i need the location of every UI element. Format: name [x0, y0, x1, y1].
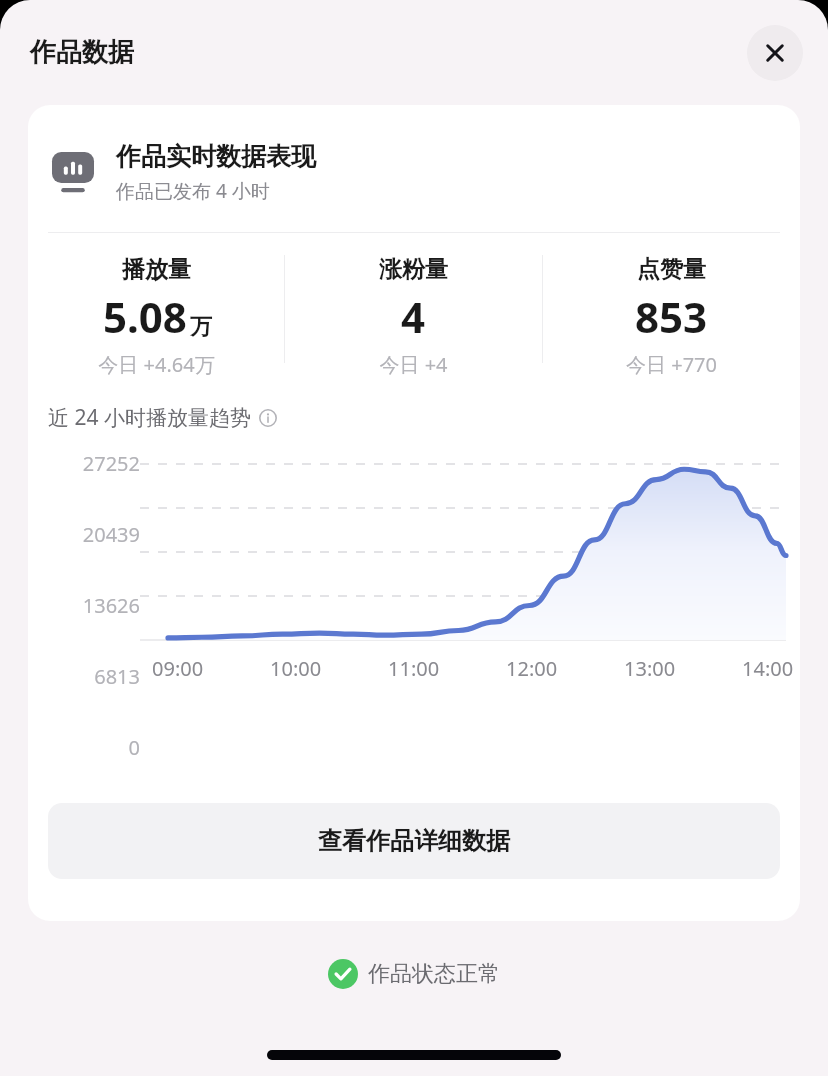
- staticText: 13626: [36, 592, 140, 619]
- staticText: 13:00: [624, 655, 676, 682]
- staticText: 查看作品详细数据: [318, 826, 510, 856]
- staticText: 作品实时数据表现: [116, 141, 316, 172]
- staticText: 点赞量: [637, 255, 706, 284]
- staticText: 播放量: [122, 255, 191, 284]
- staticText: 14:00: [742, 655, 794, 682]
- staticText: 10:00: [270, 655, 322, 682]
- staticText: 作品数据: [30, 36, 134, 69]
- button[interactable]: 查看作品详细数据: [48, 803, 780, 879]
- staticText: 5.08: [103, 288, 187, 345]
- staticText: 4: [401, 288, 426, 345]
- button[interactable]: 说明: [258, 408, 278, 428]
- button[interactable]: 播放量: [28, 255, 284, 378]
- staticText: 11:00: [388, 655, 440, 682]
- staticText: 万: [190, 313, 212, 341]
- staticText: 今日 +770: [626, 351, 717, 378]
- staticText: 作品状态正常: [368, 960, 500, 988]
- staticText: 今日 +4.64万: [98, 351, 215, 378]
- staticText: 12:00: [506, 655, 558, 682]
- staticText: 作品已发布 4 小时: [116, 178, 270, 204]
- staticText: 近 24 小时播放量趋势: [48, 403, 251, 432]
- staticText: 09:00: [152, 655, 204, 682]
- staticText: 今日 +4: [379, 351, 448, 378]
- staticText: 20439: [36, 521, 140, 548]
- staticText: 6813: [36, 663, 140, 690]
- button[interactable]: 涨粉量: [285, 255, 542, 378]
- staticText: 0: [36, 734, 140, 761]
- button[interactable]: 关闭: [747, 25, 803, 81]
- button[interactable]: 点赞量: [543, 255, 800, 378]
- staticText: 853: [635, 288, 708, 345]
- staticText: 涨粉量: [379, 255, 448, 284]
- staticText: 27252: [36, 450, 140, 477]
